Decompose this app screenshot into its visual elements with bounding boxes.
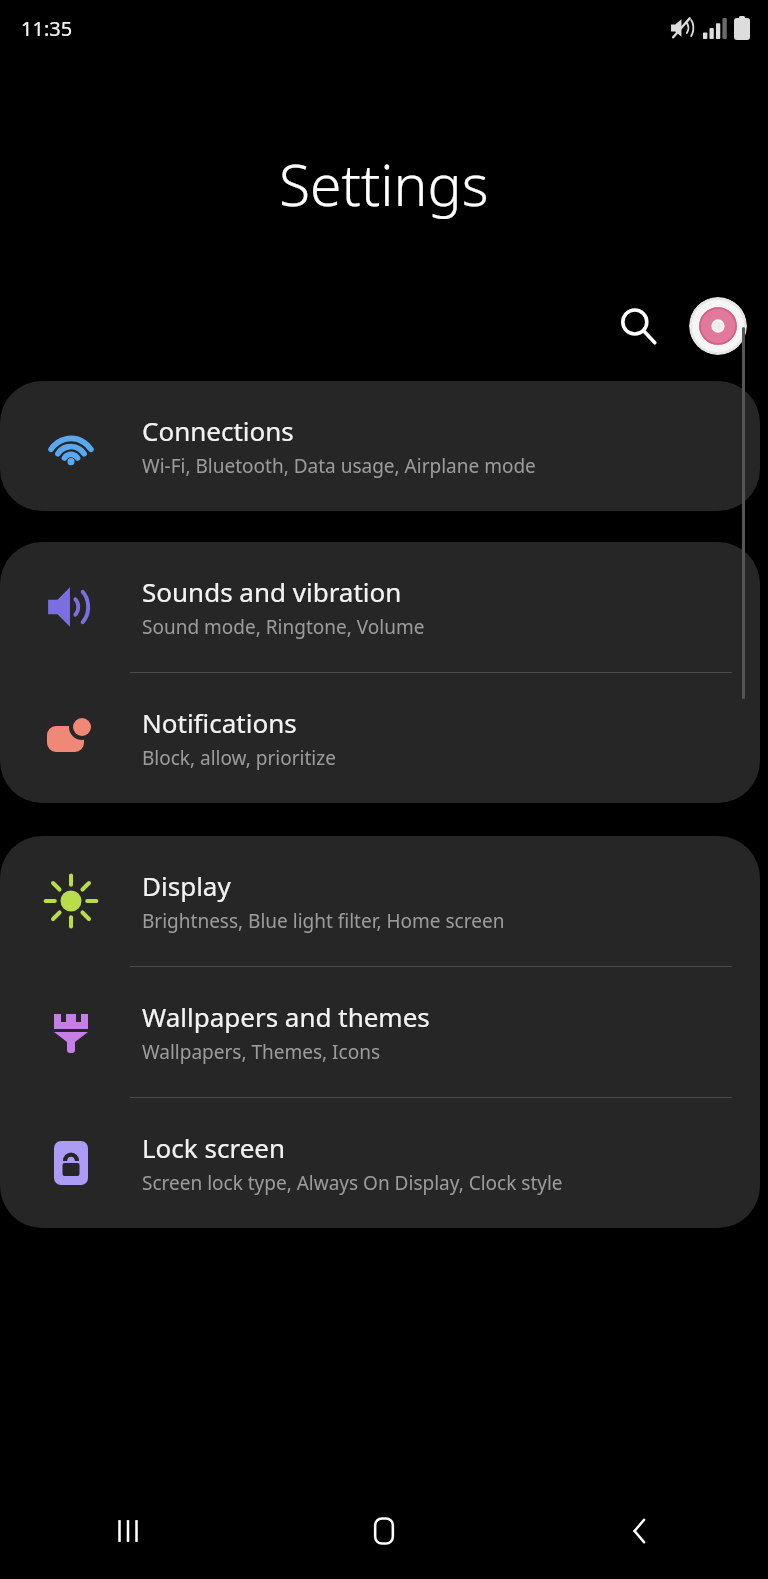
staticText: Settings xyxy=(279,145,489,223)
button[interactable]: Recent apps xyxy=(0,1483,256,1579)
button[interactable]: Lock screen xyxy=(0,1098,760,1228)
staticText: Screen lock type, Always On Display, Clo… xyxy=(142,1170,563,1196)
staticText: Sound mode, Ringtone, Volume xyxy=(142,614,425,640)
button[interactable]: Display xyxy=(0,836,760,966)
button[interactable]: Back xyxy=(512,1483,768,1579)
staticText: Connections xyxy=(142,413,294,448)
button[interactable]: Connections xyxy=(0,381,760,511)
button[interactable]: Home xyxy=(256,1483,512,1579)
staticText: Wallpapers, Themes, Icons xyxy=(142,1039,381,1065)
button[interactable]: Search xyxy=(609,297,667,355)
staticText: Brightness, Blue light filter, Home scre… xyxy=(142,908,505,934)
staticText: Wallpapers and themes xyxy=(142,999,430,1034)
staticText: 11:35 xyxy=(21,15,73,42)
staticText: Block, allow, prioritize xyxy=(142,745,336,771)
staticText: Sounds and vibration xyxy=(142,574,402,609)
staticText: Wi-Fi, Bluetooth, Data usage, Airplane m… xyxy=(142,453,536,479)
button[interactable]: Notifications xyxy=(0,673,760,803)
staticText: Notifications xyxy=(142,705,297,740)
staticText: Display xyxy=(142,868,231,903)
button[interactable]: Wallpapers and themes xyxy=(0,967,760,1097)
button[interactable]: Sounds and vibration xyxy=(0,542,760,672)
staticText: Lock screen xyxy=(142,1130,286,1165)
button[interactable]: Account xyxy=(689,297,747,355)
